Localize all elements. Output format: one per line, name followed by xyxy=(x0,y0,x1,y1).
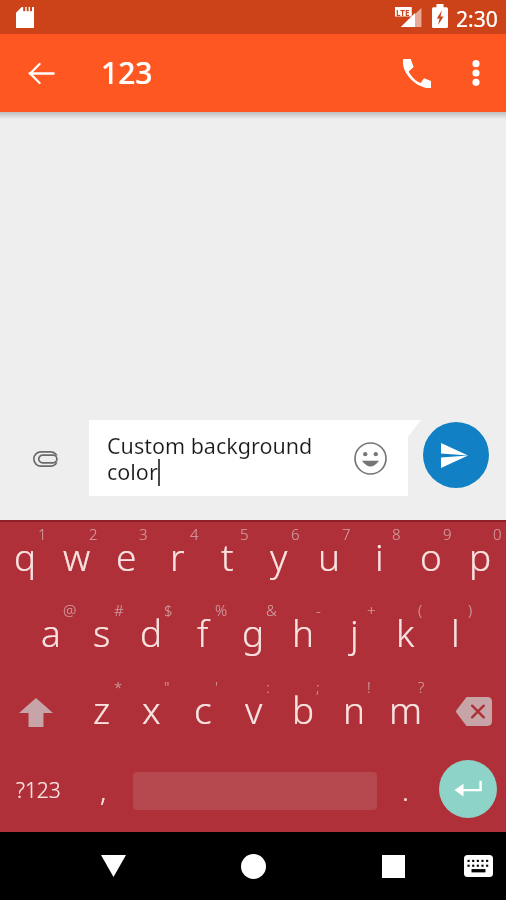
button[interactable]: " xyxy=(126,681,177,737)
button[interactable]: Emoji xyxy=(354,442,387,475)
staticText: color xyxy=(107,457,158,486)
button[interactable]: 4 xyxy=(152,528,203,584)
staticText: 8 xyxy=(392,524,401,544)
button[interactable]: Back xyxy=(18,50,64,96)
button[interactable]: $ xyxy=(126,604,177,660)
staticText: 5 xyxy=(240,524,249,544)
staticText: r xyxy=(170,531,185,581)
button[interactable]: 0 xyxy=(455,528,506,584)
button[interactable]: 8 xyxy=(354,528,405,584)
button[interactable]: Custom background xyxy=(89,420,421,496)
staticText: % xyxy=(215,600,228,620)
button[interactable]: 5 xyxy=(202,528,253,584)
button[interactable]: Backspace xyxy=(451,692,495,730)
staticText: . xyxy=(402,771,409,809)
staticText: 9 xyxy=(443,524,452,544)
button[interactable]: Attach file xyxy=(24,437,67,480)
staticText: g xyxy=(242,607,265,657)
staticText: 0 xyxy=(493,524,502,544)
staticText: LTE xyxy=(396,7,410,18)
staticText: 3 xyxy=(139,524,148,544)
button[interactable]: Shift xyxy=(11,687,61,737)
staticText: ' xyxy=(215,677,218,697)
staticText: f xyxy=(197,607,209,657)
button[interactable]: - xyxy=(278,604,329,660)
staticText: a xyxy=(41,607,61,657)
staticText: + xyxy=(367,600,376,620)
staticText: : xyxy=(266,677,270,697)
button[interactable]: Change keyboard xyxy=(456,844,500,888)
button[interactable]: ( xyxy=(380,604,431,660)
button[interactable]: ' xyxy=(177,681,228,737)
staticText: u xyxy=(318,531,341,581)
staticText: # xyxy=(114,600,124,620)
button[interactable]: Enter xyxy=(439,760,497,818)
button[interactable]: 6 xyxy=(253,528,304,584)
staticText: m xyxy=(389,684,423,734)
staticText: * xyxy=(114,677,123,697)
button[interactable]: 7 xyxy=(304,528,355,584)
button[interactable]: @ xyxy=(25,604,76,660)
staticText: o xyxy=(420,531,442,581)
button[interactable]: ?123 xyxy=(3,767,73,813)
staticText: 7 xyxy=(342,524,351,544)
staticText: ( xyxy=(418,600,423,620)
button[interactable]: & xyxy=(228,604,279,660)
staticText: 123 xyxy=(101,52,153,93)
button[interactable]: 2 xyxy=(51,528,102,584)
button[interactable]: ) xyxy=(430,604,481,660)
staticText: , xyxy=(100,771,107,809)
button[interactable]: * xyxy=(76,681,127,737)
staticText: t xyxy=(221,531,234,581)
button[interactable]: 1 xyxy=(0,528,51,584)
staticText: v xyxy=(245,684,263,734)
staticText: ) xyxy=(468,600,473,620)
button[interactable]: Send xyxy=(423,422,489,488)
button[interactable]: Back xyxy=(89,842,137,890)
staticText: ?123 xyxy=(16,776,61,805)
staticText: @ xyxy=(63,600,77,620)
staticText: b xyxy=(292,684,315,734)
staticText: 1 xyxy=(38,524,47,544)
staticText: l xyxy=(451,607,460,657)
staticText: n xyxy=(343,684,366,734)
staticText: 2 xyxy=(89,524,98,544)
button[interactable]: # xyxy=(76,604,127,660)
staticText: c xyxy=(194,684,212,734)
staticText: & xyxy=(266,600,277,620)
staticText: ; xyxy=(316,677,320,697)
button[interactable]: ? xyxy=(380,681,431,737)
button[interactable]: , xyxy=(83,766,123,814)
staticText: 6 xyxy=(291,524,300,544)
button[interactable]: ; xyxy=(278,681,329,737)
staticText: 4 xyxy=(190,524,199,544)
staticText: p xyxy=(469,531,492,581)
staticText: x xyxy=(142,684,161,734)
button[interactable]: ! xyxy=(329,681,380,737)
button[interactable]: % xyxy=(177,604,228,660)
button[interactable]: More options xyxy=(454,51,498,95)
staticText: " xyxy=(164,677,170,697)
staticText: ? xyxy=(418,677,425,697)
staticText: h xyxy=(292,607,315,657)
staticText: i xyxy=(375,531,384,581)
staticText: k xyxy=(396,607,415,657)
button[interactable]: + xyxy=(329,604,380,660)
staticText: q xyxy=(14,531,37,581)
button[interactable]: 9 xyxy=(405,528,456,584)
staticText: d xyxy=(140,607,163,657)
button[interactable]: Home xyxy=(229,842,277,890)
button[interactable]: 3 xyxy=(101,528,152,584)
staticText: - xyxy=(316,600,321,620)
staticText: e xyxy=(116,531,137,581)
staticText: $ xyxy=(164,600,173,620)
staticText: y xyxy=(270,531,288,581)
button[interactable]: Call xyxy=(392,49,440,97)
button[interactable]: : xyxy=(228,681,279,737)
button[interactable]: . xyxy=(385,766,425,814)
staticText: 2:30 xyxy=(456,5,498,34)
staticText: j xyxy=(350,607,359,657)
staticText: Custom background xyxy=(107,431,313,460)
button[interactable]: Recent apps xyxy=(369,842,417,890)
